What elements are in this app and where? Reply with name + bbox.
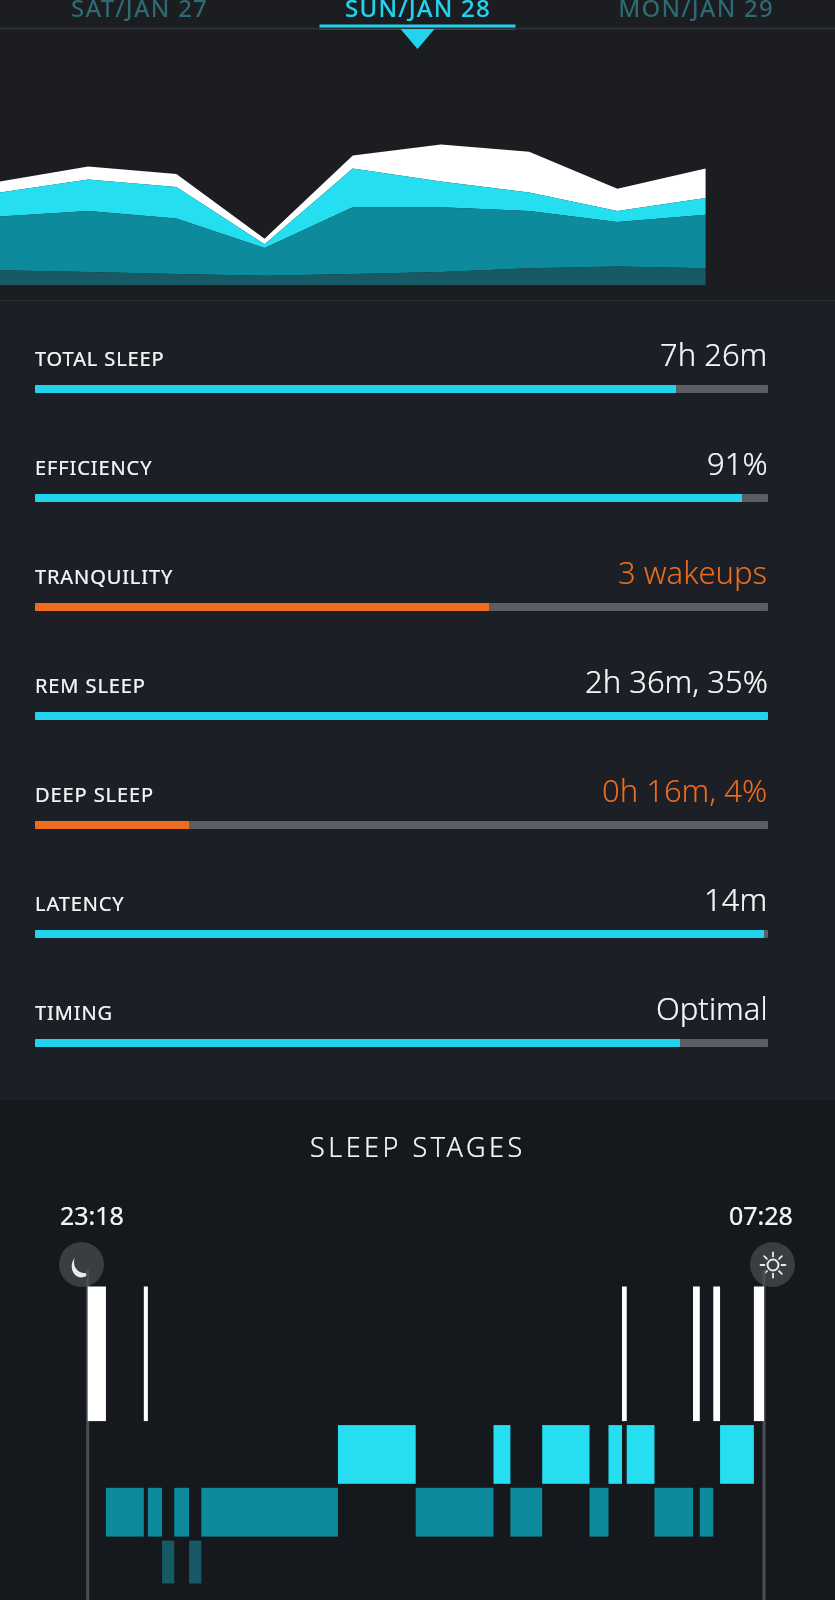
button[interactable]: DEEP SLEEP xyxy=(0,759,835,868)
staticText: TOTAL SLEEP xyxy=(35,345,165,372)
staticText: 14m xyxy=(704,878,768,920)
staticText: REM SLEEP xyxy=(35,672,146,699)
staticText: SUN/JAN 28 xyxy=(345,0,491,21)
button[interactable]: TIMING xyxy=(0,977,835,1086)
staticText: TRANQUILITY xyxy=(35,563,174,590)
staticText: SLEEP STAGES xyxy=(310,1128,526,1165)
staticText: 2h 36m, 35% xyxy=(585,660,768,702)
staticText: SAT/JAN 27 xyxy=(71,0,208,21)
staticText: 0h 16m, 4% xyxy=(602,769,768,811)
button[interactable]: Bedtime xyxy=(59,1242,104,1287)
button[interactable]: MON/JAN 29 xyxy=(557,0,835,30)
button[interactable]: Wake time xyxy=(750,1242,795,1287)
button[interactable]: SAT/JAN 27 xyxy=(0,0,279,30)
staticText: DEEP SLEEP xyxy=(35,781,154,808)
button[interactable]: TOTAL SLEEP xyxy=(0,323,835,432)
staticText: 7h 26m xyxy=(660,333,768,375)
staticText: 3 wakeups xyxy=(618,551,768,593)
staticText: EFFICIENCY xyxy=(35,454,153,481)
staticText: TIMING xyxy=(35,999,113,1026)
button[interactable]: LATENCY xyxy=(0,868,835,977)
staticText: 91% xyxy=(707,442,768,484)
staticText: 23:18 xyxy=(60,1198,124,1232)
button[interactable]: EFFICIENCY xyxy=(0,432,835,541)
staticText: Optimal xyxy=(656,987,768,1029)
staticText: 07:28 xyxy=(729,1198,793,1232)
button[interactable]: REM SLEEP xyxy=(0,650,835,759)
button[interactable]: SUN/JAN 28 xyxy=(279,0,557,30)
staticText: LATENCY xyxy=(35,890,125,917)
button[interactable]: TRANQUILITY xyxy=(0,541,835,650)
staticText: MON/JAN 29 xyxy=(618,0,774,21)
